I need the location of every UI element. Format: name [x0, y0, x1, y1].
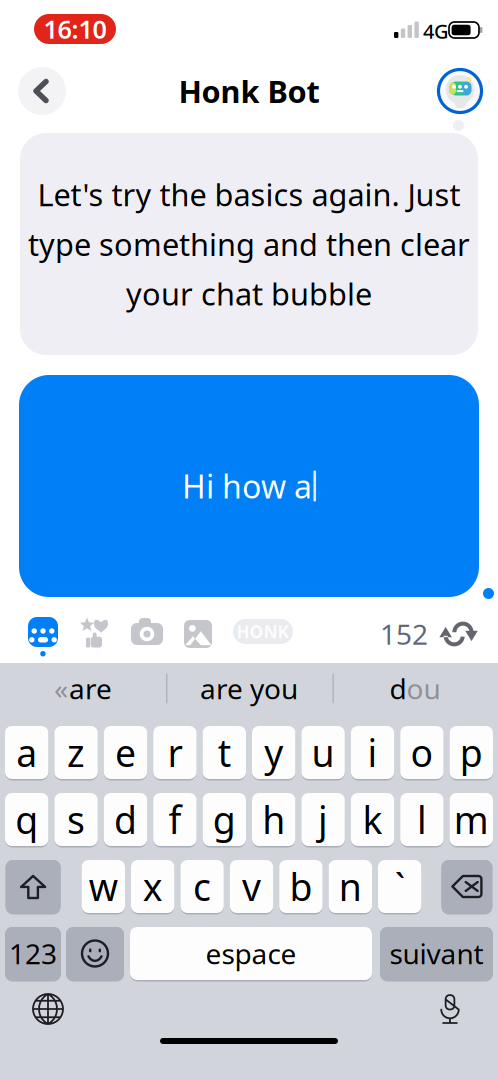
- staticText: Hi how a: [182, 465, 312, 507]
- staticText: s: [67, 795, 85, 844]
- staticText: y: [264, 728, 283, 777]
- staticText: suivant: [389, 935, 483, 972]
- staticText: are you: [200, 670, 298, 707]
- staticText: m: [454, 795, 489, 844]
- staticText: d: [389, 670, 406, 707]
- button[interactable]: v: [230, 860, 273, 913]
- button[interactable]: t: [203, 726, 246, 779]
- button[interactable]: n: [329, 860, 372, 913]
- staticText: b: [289, 862, 312, 911]
- staticText: x: [143, 862, 163, 911]
- button[interactable]: x: [131, 860, 174, 913]
- staticText: «: [54, 670, 68, 707]
- button[interactable]: d: [104, 793, 147, 846]
- staticText: `: [395, 862, 405, 911]
- staticText: l: [417, 795, 427, 844]
- button[interactable]: Switch mode: [439, 619, 477, 649]
- staticText: a: [16, 728, 37, 777]
- staticText: 16:10: [43, 12, 106, 46]
- button[interactable]: 123: [5, 927, 61, 980]
- staticText: Let's try the basics again. Just: [37, 174, 460, 215]
- button[interactable]: espace: [130, 927, 372, 980]
- button[interactable]: [6, 860, 61, 913]
- button[interactable]: suivant: [380, 927, 493, 980]
- button[interactable]: «: [0, 663, 166, 714]
- staticText: t: [218, 728, 231, 777]
- staticText: espace: [205, 935, 296, 972]
- staticText: e: [115, 728, 136, 777]
- staticText: o: [410, 728, 433, 777]
- staticText: i: [367, 728, 377, 777]
- staticText: v: [242, 862, 261, 911]
- staticText: d: [114, 795, 137, 844]
- button[interactable]: Bot profile: [432, 67, 480, 115]
- button[interactable]: o: [400, 726, 444, 779]
- staticText: h: [262, 795, 285, 844]
- staticText: type something and then clear: [28, 224, 470, 264]
- button[interactable]: Change keyboard: [26, 987, 70, 1031]
- button[interactable]: `: [378, 860, 421, 913]
- button[interactable]: e: [104, 726, 147, 779]
- button[interactable]: l: [400, 793, 444, 846]
- staticText: HONK: [236, 620, 289, 643]
- button[interactable]: b: [279, 860, 323, 913]
- button[interactable]: p: [450, 726, 493, 779]
- button[interactable]: f: [153, 793, 197, 846]
- staticText: k: [362, 795, 382, 844]
- button[interactable]: w: [82, 860, 125, 913]
- staticText: g: [213, 795, 236, 844]
- staticText: z: [67, 728, 85, 777]
- staticText: 123: [9, 935, 57, 972]
- staticText: r: [167, 728, 182, 777]
- staticText: 4G: [423, 18, 449, 44]
- button[interactable]: are you: [166, 663, 332, 714]
- button[interactable]: q: [5, 793, 48, 846]
- button[interactable]: Keyboard: [28, 617, 58, 657]
- button[interactable]: r: [153, 726, 197, 779]
- staticText: f: [168, 795, 181, 844]
- button[interactable]: c: [180, 860, 224, 913]
- staticText: n: [339, 862, 362, 911]
- staticText: q: [15, 795, 38, 844]
- button[interactable]: [441, 860, 492, 913]
- button[interactable]: s: [54, 793, 98, 846]
- button[interactable]: Back: [18, 67, 66, 115]
- button[interactable]: u: [301, 726, 345, 779]
- staticText: ou: [406, 670, 440, 707]
- staticText: Honk Bot: [178, 71, 319, 111]
- button[interactable]: Stickers: [79, 617, 111, 649]
- staticText: j: [318, 795, 328, 844]
- button[interactable]: j: [301, 793, 345, 846]
- button[interactable]: k: [351, 793, 394, 846]
- button[interactable]: m: [450, 793, 493, 846]
- button[interactable]: g: [203, 793, 246, 846]
- staticText: u: [312, 728, 335, 777]
- button[interactable]: HONK: [233, 619, 293, 644]
- button[interactable]: y: [252, 726, 295, 779]
- button[interactable]: Dictate: [428, 987, 472, 1031]
- button[interactable]: h: [252, 793, 295, 846]
- button[interactable]: Photos: [184, 618, 212, 650]
- staticText: w: [89, 862, 118, 911]
- staticText: 152: [380, 615, 428, 653]
- staticText: your chat bubble: [126, 273, 372, 314]
- button[interactable]: a: [5, 726, 48, 779]
- staticText: p: [460, 728, 483, 777]
- staticText: c: [193, 862, 211, 911]
- button[interactable]: [66, 927, 124, 980]
- button[interactable]: i: [351, 726, 394, 779]
- button[interactable]: Camera: [131, 618, 163, 650]
- button[interactable]: z: [54, 726, 98, 779]
- staticText: are: [69, 670, 112, 707]
- button[interactable]: d: [332, 663, 498, 714]
